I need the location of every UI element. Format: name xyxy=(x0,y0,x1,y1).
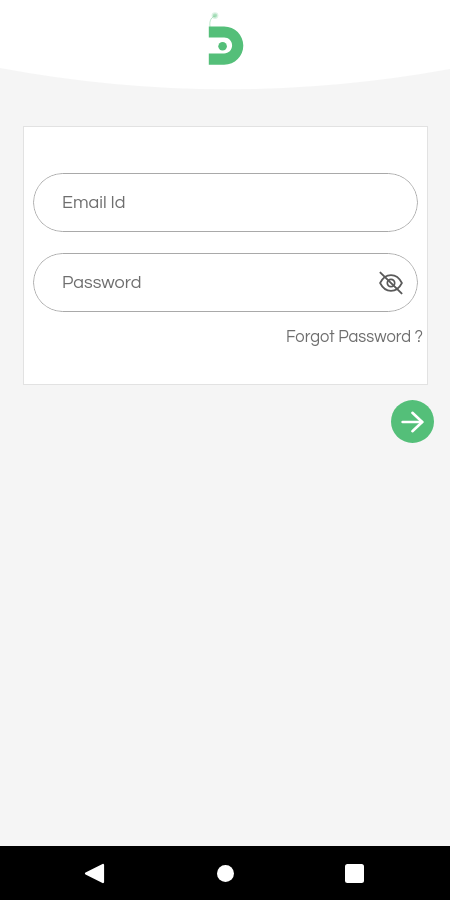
staticText: Email Id xyxy=(62,193,126,212)
button[interactable]: Recent apps xyxy=(334,853,375,894)
staticText: Forgot Password ? xyxy=(286,328,423,345)
button[interactable]: Back xyxy=(74,853,115,894)
button[interactable]: Email Id xyxy=(33,173,418,232)
button[interactable]: Forgot Password ? xyxy=(286,326,428,347)
button[interactable]: Home xyxy=(205,853,246,894)
staticText: Password xyxy=(62,273,142,292)
button[interactable]: Submit xyxy=(391,400,434,443)
button[interactable]: Password xyxy=(33,253,418,312)
